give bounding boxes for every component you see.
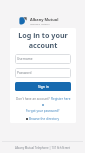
staticText: Albany Mutual Telephone | 131 6th Street <box>15 146 70 150</box>
staticText: Register here <box>51 97 71 101</box>
button[interactable]: Register here <box>51 97 71 101</box>
staticText: Albany Mutual <box>30 17 59 22</box>
button[interactable]: Password <box>15 68 71 78</box>
staticText: Log in to your account <box>15 30 71 50</box>
staticText: Sign in <box>38 84 49 89</box>
staticText: Browse the directory <box>29 117 60 121</box>
staticText: Don't have an account? <box>16 97 51 101</box>
staticText: Username <box>17 57 33 61</box>
staticText: TELEPHONE COMPANY <box>30 23 50 25</box>
button[interactable]: Browse the directory <box>15 117 71 121</box>
button[interactable]: Forgot your password? <box>15 109 71 113</box>
staticText: Password <box>17 71 32 75</box>
button[interactable]: Username <box>15 54 71 64</box>
button[interactable]: Sign in <box>15 82 71 91</box>
staticText: Forgot your password? <box>26 109 60 113</box>
